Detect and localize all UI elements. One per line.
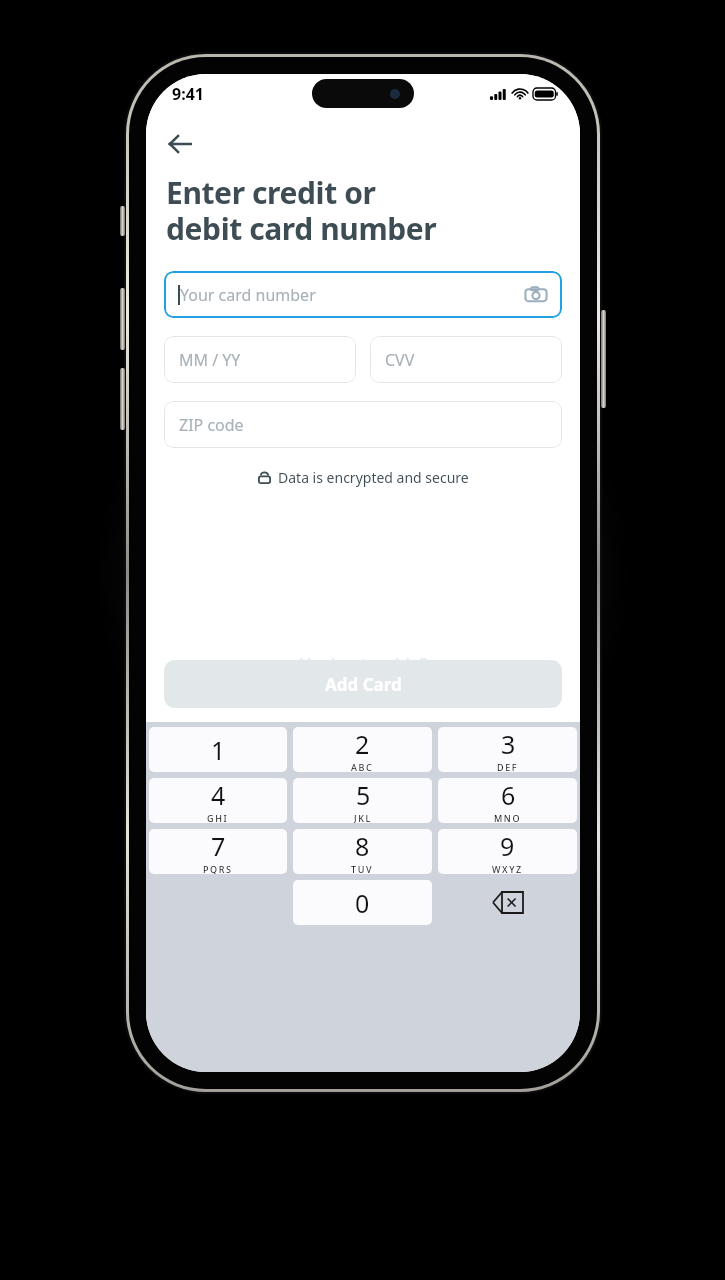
button[interactable]: 1	[149, 727, 287, 772]
staticText: MNO	[494, 812, 522, 823]
staticText: ZIP code	[179, 414, 244, 436]
button[interactable]: 9	[438, 829, 577, 874]
staticText: 9	[500, 829, 515, 863]
button[interactable]: Back	[158, 122, 202, 166]
button[interactable]: CVV	[370, 336, 562, 383]
staticText: 3	[501, 727, 516, 761]
staticText: Your card number	[180, 284, 316, 306]
button[interactable]: 0	[293, 880, 432, 925]
button[interactable]: 7	[149, 829, 287, 874]
button[interactable]: MM / YY	[164, 336, 356, 383]
staticText: 9:41	[172, 83, 204, 105]
staticText: Having trouble?	[299, 652, 428, 675]
button[interactable]: 3	[438, 727, 577, 772]
staticText: 7	[211, 829, 226, 863]
button[interactable]: Add Card	[164, 660, 562, 708]
staticText: MM / YY	[179, 349, 241, 371]
staticText: Add Card	[325, 673, 402, 696]
button[interactable]: Delete	[438, 880, 577, 925]
staticText: DEF	[497, 761, 519, 772]
button[interactable]: 6	[438, 778, 577, 823]
staticText: 5	[356, 778, 371, 812]
staticText: 4	[211, 778, 226, 812]
staticText: CVV	[385, 349, 415, 371]
button[interactable]: 8	[293, 829, 432, 874]
staticText: 1	[211, 733, 226, 767]
button[interactable]: 2	[293, 727, 432, 772]
staticText: 6	[501, 778, 516, 812]
staticText: PQRS	[203, 863, 233, 874]
staticText: GHI	[207, 812, 229, 823]
button[interactable]: ZIP code	[164, 401, 562, 448]
staticText: Enter credit or debit card number	[166, 172, 437, 249]
staticText: 8	[355, 829, 370, 863]
staticText: 0	[355, 886, 370, 920]
staticText: TUV	[351, 863, 374, 874]
staticText: ABC	[351, 761, 374, 772]
button[interactable]: 4	[149, 778, 287, 823]
other: Scan card	[524, 283, 548, 307]
staticText: JKL	[354, 812, 372, 823]
button[interactable]: Your card number	[164, 271, 562, 318]
staticText: 2	[355, 727, 370, 761]
staticText: Data is encrypted and secure	[278, 468, 469, 487]
button[interactable]: 5	[293, 778, 432, 823]
staticText: WXYZ	[492, 863, 523, 874]
